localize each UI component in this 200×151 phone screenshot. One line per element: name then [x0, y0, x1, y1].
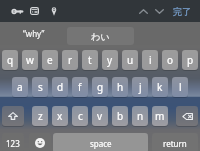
staticText: t	[88, 53, 92, 67]
button[interactable]: v	[92, 106, 108, 126]
button[interactable]: Emoji keyboard	[29, 133, 51, 151]
button[interactable]: 完了	[167, 0, 200, 22]
button[interactable]: Credit cards	[25, 0, 44, 22]
button[interactable]: d	[52, 77, 68, 97]
staticText: y	[107, 53, 113, 67]
staticText: “why”	[23, 28, 45, 39]
button[interactable]: わい	[67, 27, 134, 45]
button[interactable]: 123	[2, 133, 24, 151]
button[interactable]: Passwords	[7, 0, 26, 22]
staticText: space	[90, 138, 112, 149]
staticText: e	[47, 53, 53, 67]
button[interactable]: x	[52, 106, 68, 126]
staticText: w	[26, 53, 34, 67]
button[interactable]: y	[102, 50, 118, 70]
staticText: h	[117, 80, 124, 94]
button[interactable]: a	[12, 77, 28, 97]
staticText: l	[179, 80, 182, 94]
staticText: return	[163, 138, 187, 149]
button[interactable]: space	[53, 133, 148, 151]
staticText: k	[157, 80, 163, 94]
staticText: a	[17, 80, 23, 94]
button[interactable]: g	[92, 77, 108, 97]
staticText: n	[137, 109, 144, 123]
staticText: s	[38, 80, 43, 94]
staticText: q	[7, 53, 14, 67]
staticText: r	[68, 53, 73, 67]
staticText: 123	[6, 138, 20, 149]
button[interactable]: o	[162, 50, 178, 70]
button[interactable]: k	[152, 77, 168, 97]
button[interactable]: i	[142, 50, 158, 70]
button[interactable]: z	[32, 106, 48, 126]
staticText: u	[127, 53, 134, 67]
staticText: f	[78, 80, 82, 94]
button[interactable]: w	[22, 50, 38, 70]
button[interactable]: Backspace	[176, 106, 198, 126]
button[interactable]: f	[72, 77, 88, 97]
staticText: わい	[91, 31, 110, 42]
button[interactable]: m	[152, 106, 168, 126]
staticText: b	[117, 109, 124, 123]
staticText: 完了	[173, 6, 191, 17]
button[interactable]: l	[172, 77, 188, 97]
button[interactable]: s	[32, 77, 48, 97]
button[interactable]: n	[132, 106, 148, 126]
button[interactable]: c	[72, 106, 88, 126]
staticText: d	[57, 80, 64, 94]
staticText: c	[78, 109, 83, 123]
button[interactable]: e	[42, 50, 58, 70]
button[interactable]: Next field	[151, 0, 167, 22]
staticText: o	[167, 53, 174, 67]
staticText: i	[149, 53, 152, 67]
button[interactable]: return	[152, 133, 198, 151]
button[interactable]: r	[62, 50, 78, 70]
button[interactable]: h	[112, 77, 128, 97]
button[interactable]: t	[82, 50, 98, 70]
button[interactable]: q	[2, 50, 18, 70]
button[interactable]: u	[122, 50, 138, 70]
button[interactable]: j	[132, 77, 148, 97]
staticText: g	[97, 80, 104, 94]
staticText: z	[38, 109, 43, 123]
staticText: p	[187, 53, 194, 67]
button[interactable]: Shift	[2, 106, 24, 126]
staticText: j	[139, 80, 142, 94]
button[interactable]: Previous field	[135, 0, 151, 22]
staticText: x	[57, 109, 63, 123]
button[interactable]: “why”	[0, 22, 67, 45]
button[interactable]: Addresses	[44, 0, 63, 22]
staticText: v	[97, 109, 103, 123]
button[interactable]: p	[182, 50, 198, 70]
staticText: m	[155, 109, 165, 123]
button[interactable]: b	[112, 106, 128, 126]
